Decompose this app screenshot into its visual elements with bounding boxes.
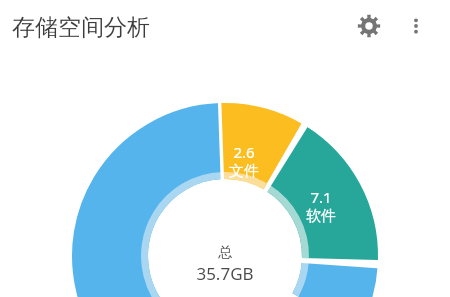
- staticText: 软件: [306, 207, 336, 226]
- staticText: 2.6: [233, 142, 255, 162]
- staticText: 7.1: [310, 187, 332, 207]
- staticText: 存储空间分析: [12, 13, 150, 42]
- button[interactable]: Settings: [351, 8, 387, 44]
- staticText: 35.7GB: [196, 262, 254, 285]
- button[interactable]: More options: [398, 8, 434, 44]
- staticText: 文件: [229, 162, 259, 181]
- staticText: 总: [218, 244, 232, 262]
